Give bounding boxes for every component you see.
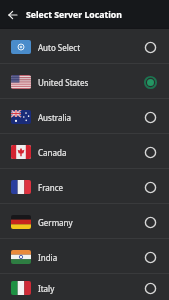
staticText: Italy — [38, 283, 55, 294]
button[interactable]: Germany — [0, 204, 169, 238]
button[interactable]: Italy — [0, 274, 169, 300]
staticText: France — [38, 182, 64, 193]
button[interactable]: Canada — [0, 134, 169, 168]
button[interactable]: India — [0, 239, 169, 273]
staticText: Auto Select — [38, 42, 81, 53]
staticText: Select Server Location — [26, 9, 122, 21]
staticText: Germany — [38, 217, 73, 228]
staticText: United States — [38, 77, 89, 88]
button[interactable] — [8, 10, 18, 20]
staticText: Canada — [38, 147, 67, 158]
staticText: Australia — [38, 112, 72, 123]
staticText: India — [38, 252, 58, 263]
button[interactable]: France — [0, 169, 169, 203]
button[interactable]: United States — [0, 64, 169, 98]
button[interactable]: Auto Select — [0, 29, 169, 63]
button[interactable]: Australia — [0, 99, 169, 133]
